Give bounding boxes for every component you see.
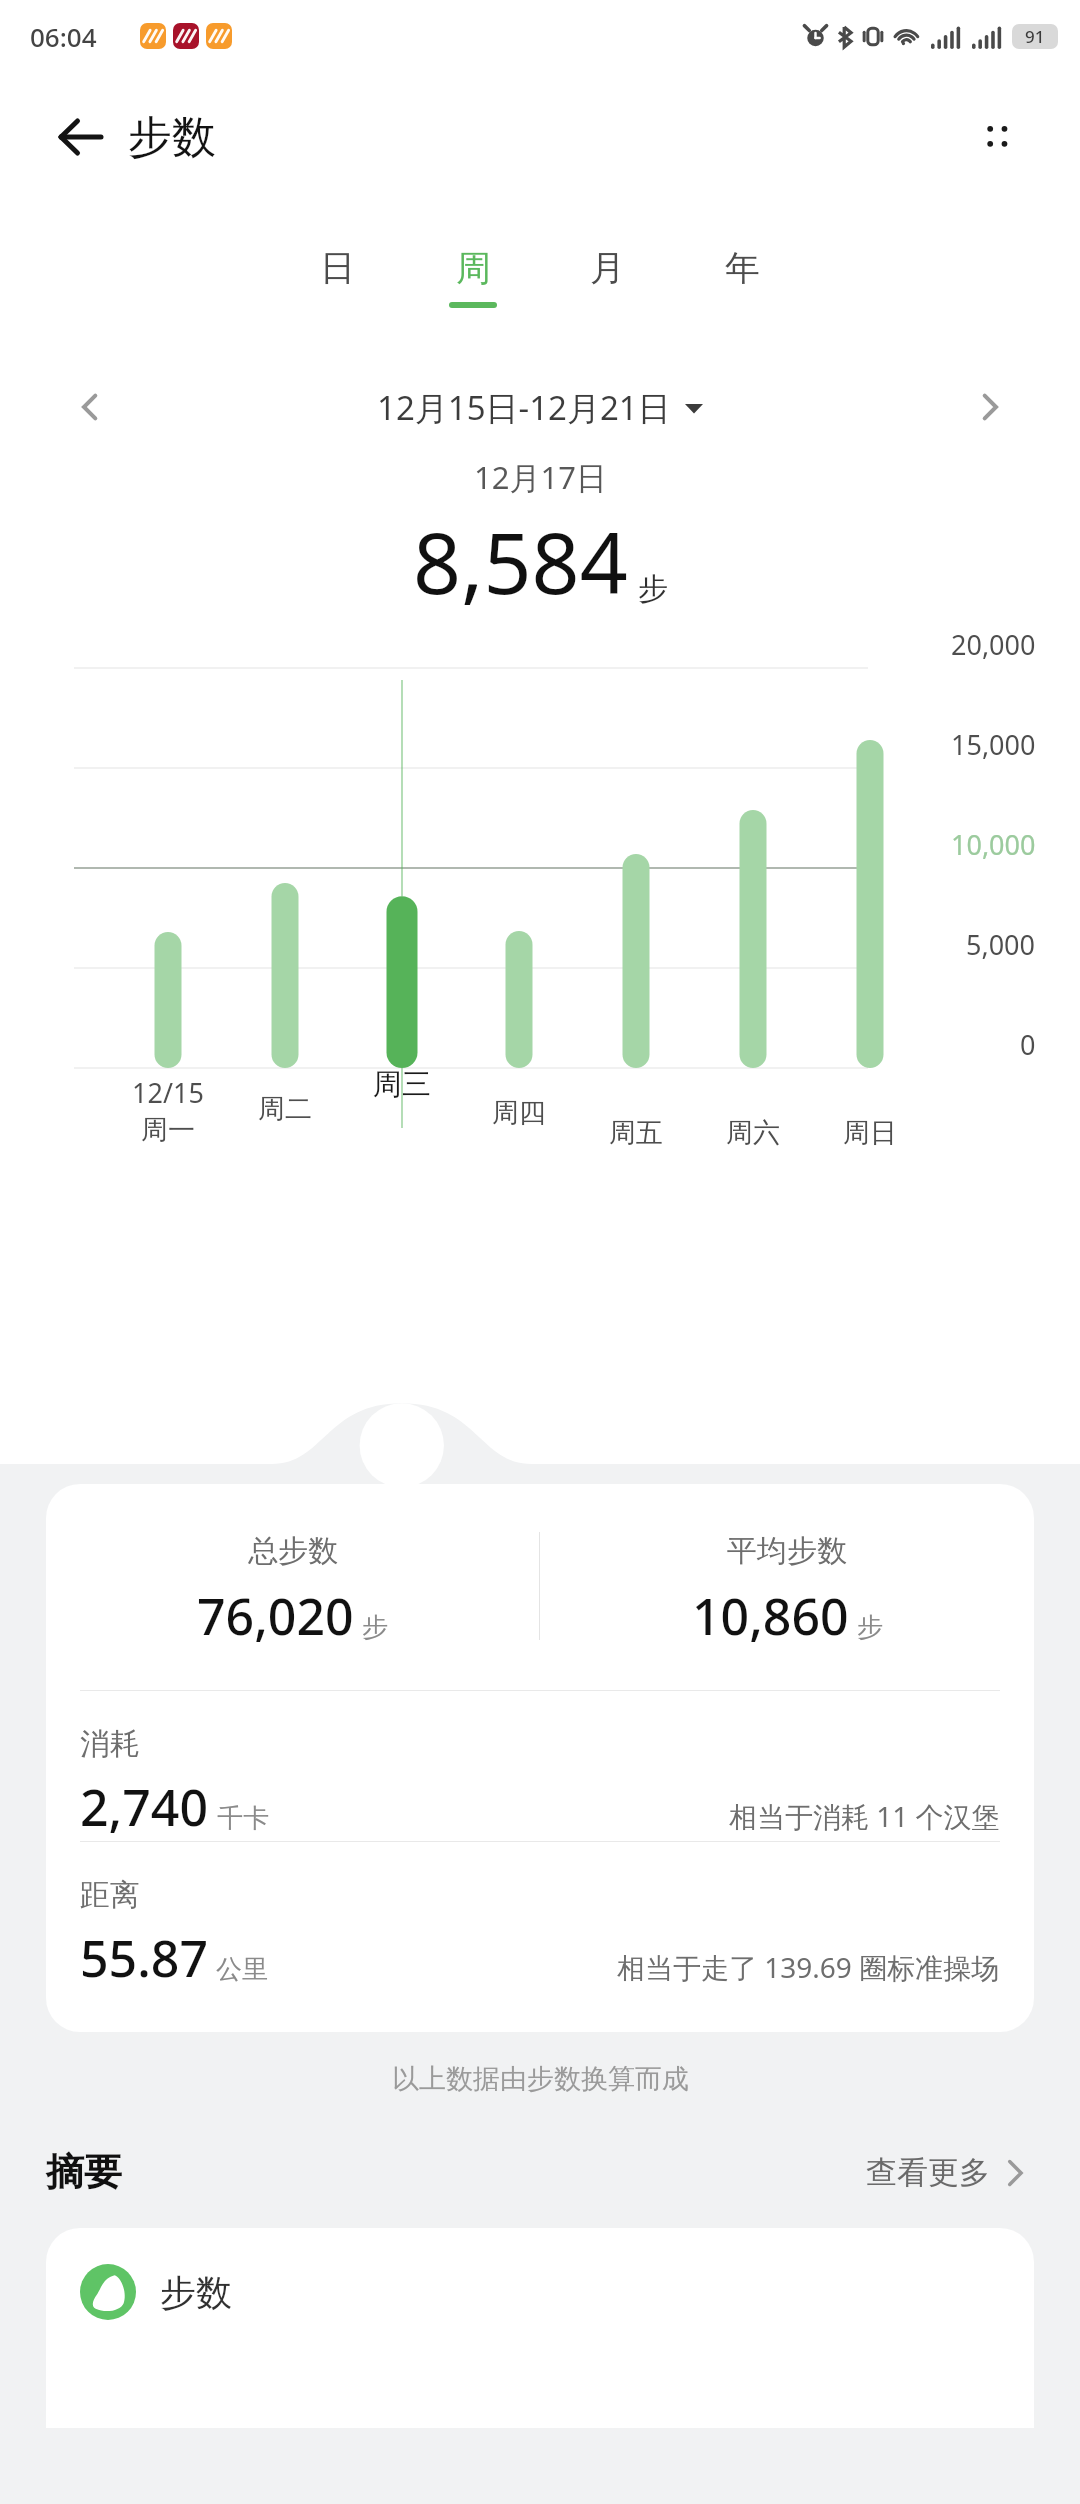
staticText: 10,860 — [692, 1582, 849, 1650]
staticText: 步数 — [128, 110, 216, 165]
staticText: 相当于走了 139.69 圈标准操场 — [617, 1948, 1000, 1986]
staticText: 步 — [857, 1611, 883, 1644]
staticText: 月 — [590, 246, 625, 290]
button[interactable]: 12月15日-12月21日 — [377, 385, 703, 430]
staticText: 06:04 — [30, 19, 97, 54]
button[interactable]: 年 — [675, 246, 810, 302]
staticText: 周三 — [373, 1066, 431, 1103]
staticText: 步 — [638, 570, 668, 608]
staticText: 总步数 — [248, 1532, 338, 1570]
staticText: 日 — [320, 246, 355, 290]
staticText: 15,000 — [951, 726, 1036, 763]
staticText: 千卡 — [217, 1802, 269, 1835]
button[interactable]: 总步数 — [46, 1484, 1034, 2032]
staticText: 步 — [362, 1611, 388, 1644]
staticText: 12/15 — [132, 1074, 204, 1111]
staticText: 相当于消耗 11 个汉堡 — [729, 1797, 1000, 1835]
button[interactable]: Back — [50, 107, 110, 167]
staticText: 距离 — [80, 1876, 140, 1914]
button[interactable]: 周 — [405, 246, 540, 308]
staticText: 10,000 — [951, 826, 1036, 863]
staticText: 以上数据由步数换算而成 — [392, 2062, 689, 2096]
staticText: 8,584 — [413, 504, 628, 618]
staticText: 周二 — [258, 1092, 312, 1126]
staticText: 年 — [725, 246, 760, 290]
button[interactable]: Previous week — [60, 377, 120, 437]
button[interactable]: 步数 — [46, 2228, 1034, 2428]
staticText: 周日 — [843, 1116, 897, 1150]
staticText: 20,000 — [951, 626, 1036, 663]
staticText: 76,020 — [197, 1582, 354, 1650]
staticText: 周五 — [609, 1116, 663, 1150]
button[interactable]: More options — [962, 102, 1032, 172]
staticText: 5,000 — [966, 926, 1036, 963]
staticText: 12月17日 — [474, 456, 607, 498]
button[interactable]: 日 — [270, 246, 405, 302]
staticText: 摘要 — [46, 2148, 122, 2196]
button[interactable]: 月 — [540, 246, 675, 302]
staticText: 消耗 — [80, 1725, 140, 1763]
button[interactable]: 查看更多 — [866, 2153, 1034, 2192]
staticText: 91 — [1025, 25, 1045, 48]
staticText: 查看更多 — [866, 2153, 990, 2192]
staticText: 平均步数 — [727, 1532, 847, 1570]
staticText: 12月15日-12月21日 — [377, 385, 671, 430]
staticText: 2,740 — [80, 1773, 209, 1841]
staticText: 周一 — [141, 1113, 195, 1147]
staticText: 0 — [1020, 1026, 1036, 1063]
staticText: 55.87 — [80, 1924, 208, 1992]
staticText: 步数 — [160, 2270, 232, 2315]
staticText: 公里 — [216, 1953, 268, 1986]
staticText: 周六 — [726, 1116, 780, 1150]
staticText: 周四 — [492, 1096, 546, 1130]
button[interactable]: Next week — [960, 377, 1020, 437]
staticText: 周 — [456, 246, 491, 290]
